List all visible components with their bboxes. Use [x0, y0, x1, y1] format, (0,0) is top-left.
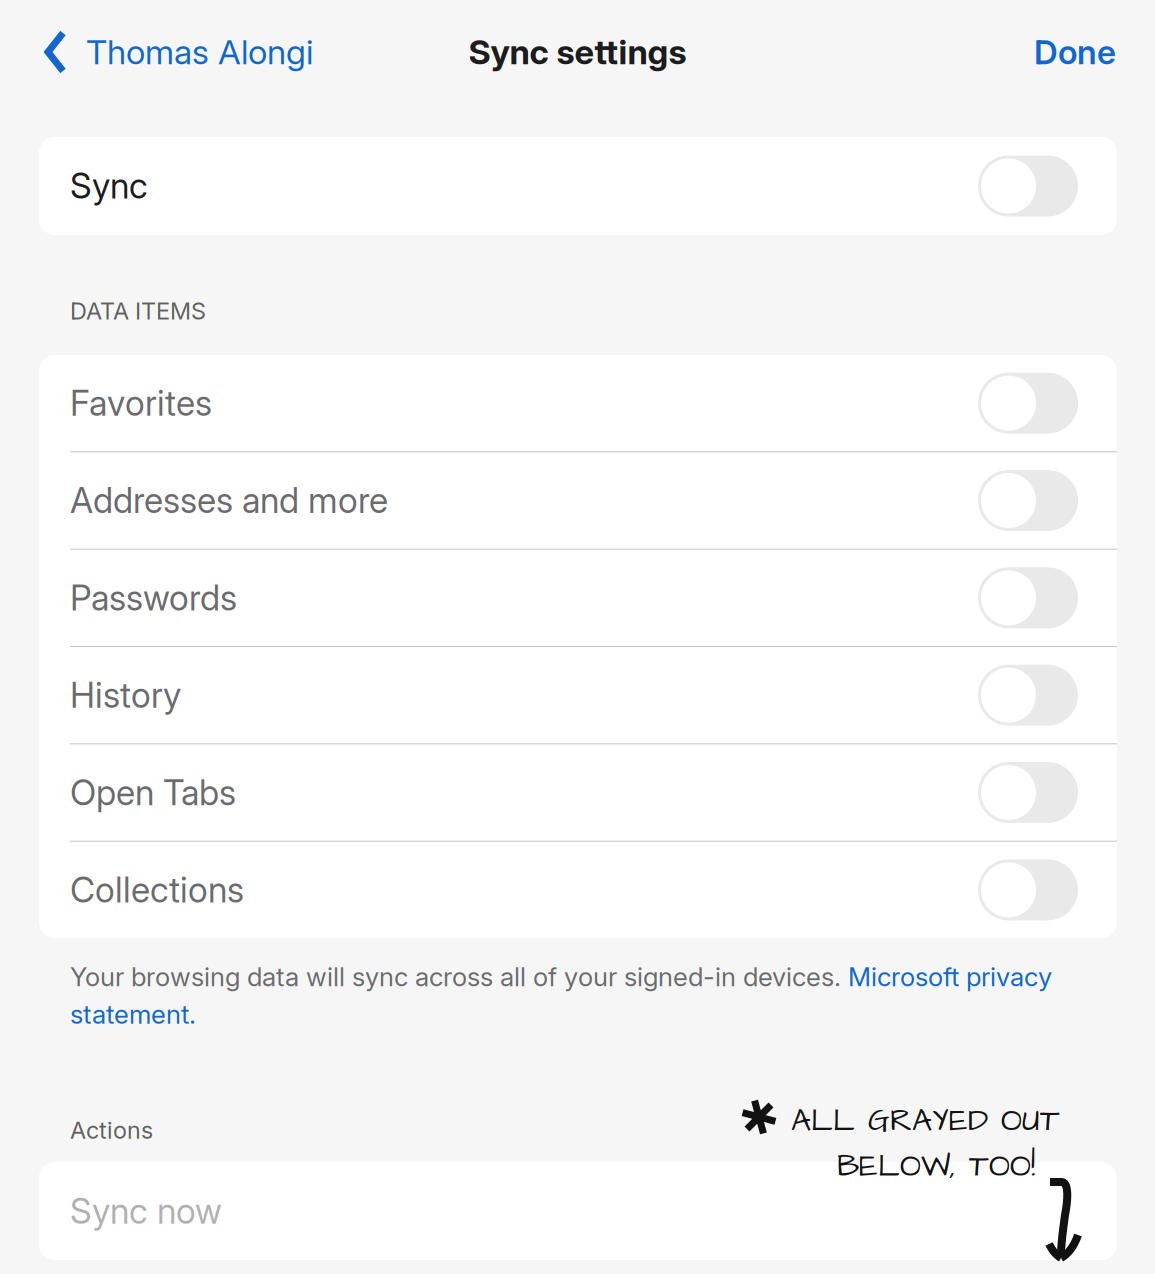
- button[interactable]: Favorites: [39, 355, 1117, 451]
- button[interactable]: Sync now: [39, 1162, 1117, 1260]
- button[interactable]: Passwords: [39, 550, 1117, 646]
- staticText: Thomas Alongi: [86, 31, 313, 72]
- staticText: BELOW, TOO!: [837, 1144, 1035, 1188]
- staticText: Sync: [70, 165, 148, 207]
- staticText: DATA ITEMS: [70, 297, 206, 325]
- button[interactable]: Addresses and more: [39, 452, 1117, 549]
- staticText: Sync settings: [468, 31, 686, 72]
- button[interactable]: Sync: [39, 137, 1117, 235]
- staticText: Done: [1034, 32, 1116, 72]
- staticText: Actions: [70, 1116, 153, 1144]
- staticText: Collections: [70, 869, 244, 911]
- staticText: Sync now: [70, 1190, 222, 1232]
- staticText: Open Tabs: [70, 772, 236, 813]
- staticText: Passwords: [70, 577, 237, 619]
- staticText: History: [70, 674, 181, 716]
- staticText: ALL GRAYED OUT: [791, 1099, 1060, 1142]
- staticText: Addresses and more: [70, 479, 388, 521]
- button[interactable]: History: [39, 647, 1117, 743]
- button[interactable]: Open Tabs: [39, 744, 1117, 841]
- button[interactable]: Thomas Alongi: [0, 0, 329, 104]
- staticText: Your browsing data will sync across all …: [70, 958, 1052, 1033]
- staticText: Favorites: [70, 382, 212, 424]
- button[interactable]: Collections: [39, 842, 1117, 938]
- button[interactable]: Done: [1008, 0, 1155, 104]
